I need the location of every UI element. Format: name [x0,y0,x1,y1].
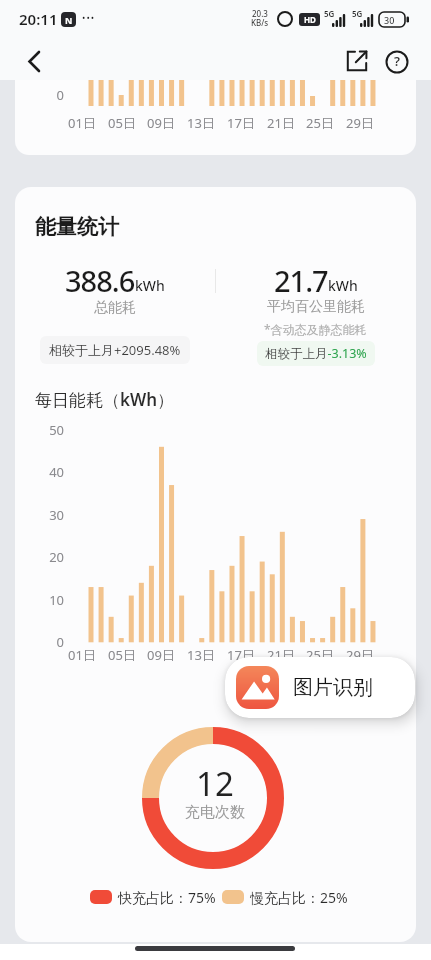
staticText: 25日 [300,646,340,664]
staticText: 12 [165,761,265,806]
staticText: 21日 [261,646,301,664]
staticText: 21.7 [274,261,328,300]
staticText: 01日 [62,646,102,664]
staticText: 05日 [102,114,142,132]
button[interactable] [335,41,375,81]
staticText: 0 [34,633,64,651]
staticText: 30 [384,14,395,26]
staticText: 40 [34,463,64,481]
staticText: 17日 [221,114,261,132]
staticText: 0 [34,86,64,104]
staticText: 总能耗 [94,299,136,317]
staticText: 20 [34,548,64,566]
staticText: 01日 [62,114,102,132]
staticText: ••• [82,11,96,23]
staticText: 图片识别 [293,675,373,700]
staticText: 13日 [181,114,221,132]
staticText: kWh [135,276,165,295]
staticText: 快充占比：75% [118,888,216,907]
button[interactable] [14,41,54,81]
staticText: 13日 [181,646,221,664]
staticText: 388.6 [65,261,135,300]
staticText: 09日 [141,114,181,132]
staticText: 20.3 [252,8,268,19]
staticText: 相较于上月+2095.48% [49,341,181,359]
staticText: 05日 [102,646,142,664]
staticText: 29日 [340,646,380,664]
staticText: 17日 [221,646,261,664]
staticText: N [65,14,73,26]
staticText: 29日 [340,114,380,132]
staticText: HD [304,14,316,25]
button[interactable]: ? [377,41,417,81]
staticText: 平均百公里能耗 [267,298,365,316]
staticText: 30 [34,506,64,524]
staticText: 09日 [141,646,181,664]
staticText: 20:11 [19,9,58,29]
staticText: 21日 [261,114,301,132]
staticText: ? [394,52,400,70]
staticText: 充电次数 [165,803,265,822]
button[interactable]: 图片识别 [225,657,415,718]
staticText: KB/s [251,17,269,28]
staticText: 慢充占比：25% [250,888,348,907]
staticText: 50 [34,421,64,439]
staticText: 10 [34,591,64,609]
staticText: kWh [328,276,358,295]
staticText: 25日 [300,114,340,132]
staticText: *含动态及静态能耗 [264,321,367,337]
staticText: 5G [352,8,363,19]
staticText: 每日能耗（kWh） [35,388,175,411]
staticText: 能量统计 [35,214,119,240]
staticText: 5G [324,8,335,19]
staticText: 相较于上月-3.13% [265,345,367,362]
